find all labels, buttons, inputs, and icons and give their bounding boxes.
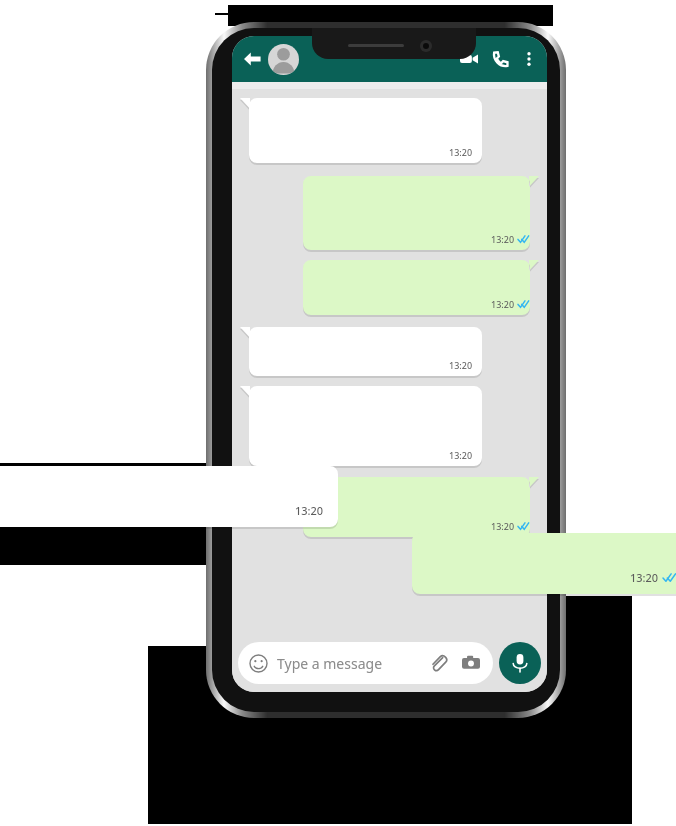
button[interactable]: Camera: [460, 652, 482, 674]
staticText: 13:20: [630, 570, 659, 585]
button[interactable]: Video call: [455, 45, 483, 73]
staticText: 13:20: [449, 449, 473, 461]
button[interactable]: 13:20: [303, 176, 539, 252]
button[interactable]: Attach: [427, 652, 449, 674]
button[interactable]: 13:20: [303, 260, 539, 317]
button[interactable]: 13:20: [240, 327, 482, 378]
button[interactable]: Type a message: [238, 642, 493, 684]
staticText: 13:20: [449, 146, 473, 158]
button[interactable]: 13:20: [240, 386, 482, 468]
staticText: Type a message: [277, 654, 383, 673]
button[interactable]: More options: [517, 47, 541, 71]
staticText: 13:20: [491, 298, 515, 310]
button[interactable]: Voice call: [487, 45, 515, 73]
staticText: 13:20: [449, 359, 473, 371]
staticText: 13:20: [295, 503, 324, 518]
staticText: 13:20: [491, 233, 515, 245]
button[interactable]: 13:20: [412, 533, 676, 596]
button[interactable]: Record voice message: [499, 642, 541, 684]
staticText: 13:20: [491, 520, 515, 532]
button[interactable]: Back: [238, 45, 266, 73]
button[interactable]: 13:20: [240, 98, 482, 165]
button[interactable]: 13:20: [303, 477, 539, 539]
button[interactable]: 13:20: [0, 466, 338, 529]
button[interactable]: Contact profile: [268, 44, 299, 75]
